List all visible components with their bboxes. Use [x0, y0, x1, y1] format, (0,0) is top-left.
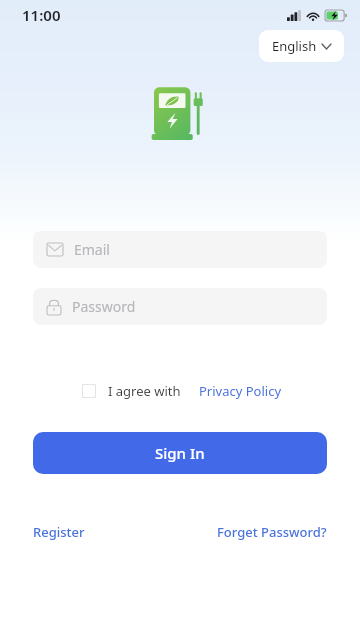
staticText: Sign In [155, 443, 205, 463]
button[interactable]: Register [33, 520, 85, 544]
staticText: Privacy Policy [199, 382, 282, 400]
button[interactable]: Privacy Policy [199, 380, 282, 402]
button[interactable]: Email [33, 231, 327, 268]
staticText: 11:00 [22, 5, 61, 25]
button[interactable]: English [259, 30, 344, 62]
button[interactable]: Password [33, 288, 327, 325]
staticText: Password [72, 297, 136, 316]
button[interactable]: Forget Password? [217, 520, 327, 544]
button[interactable]: I agree with privacy policy [79, 381, 99, 401]
button[interactable]: Sign In [33, 432, 327, 474]
staticText: Forget Password? [217, 523, 327, 541]
staticText: I agree with [108, 382, 181, 400]
staticText: English [272, 37, 317, 55]
staticText: Register [33, 523, 85, 541]
staticText: Email [74, 240, 110, 259]
